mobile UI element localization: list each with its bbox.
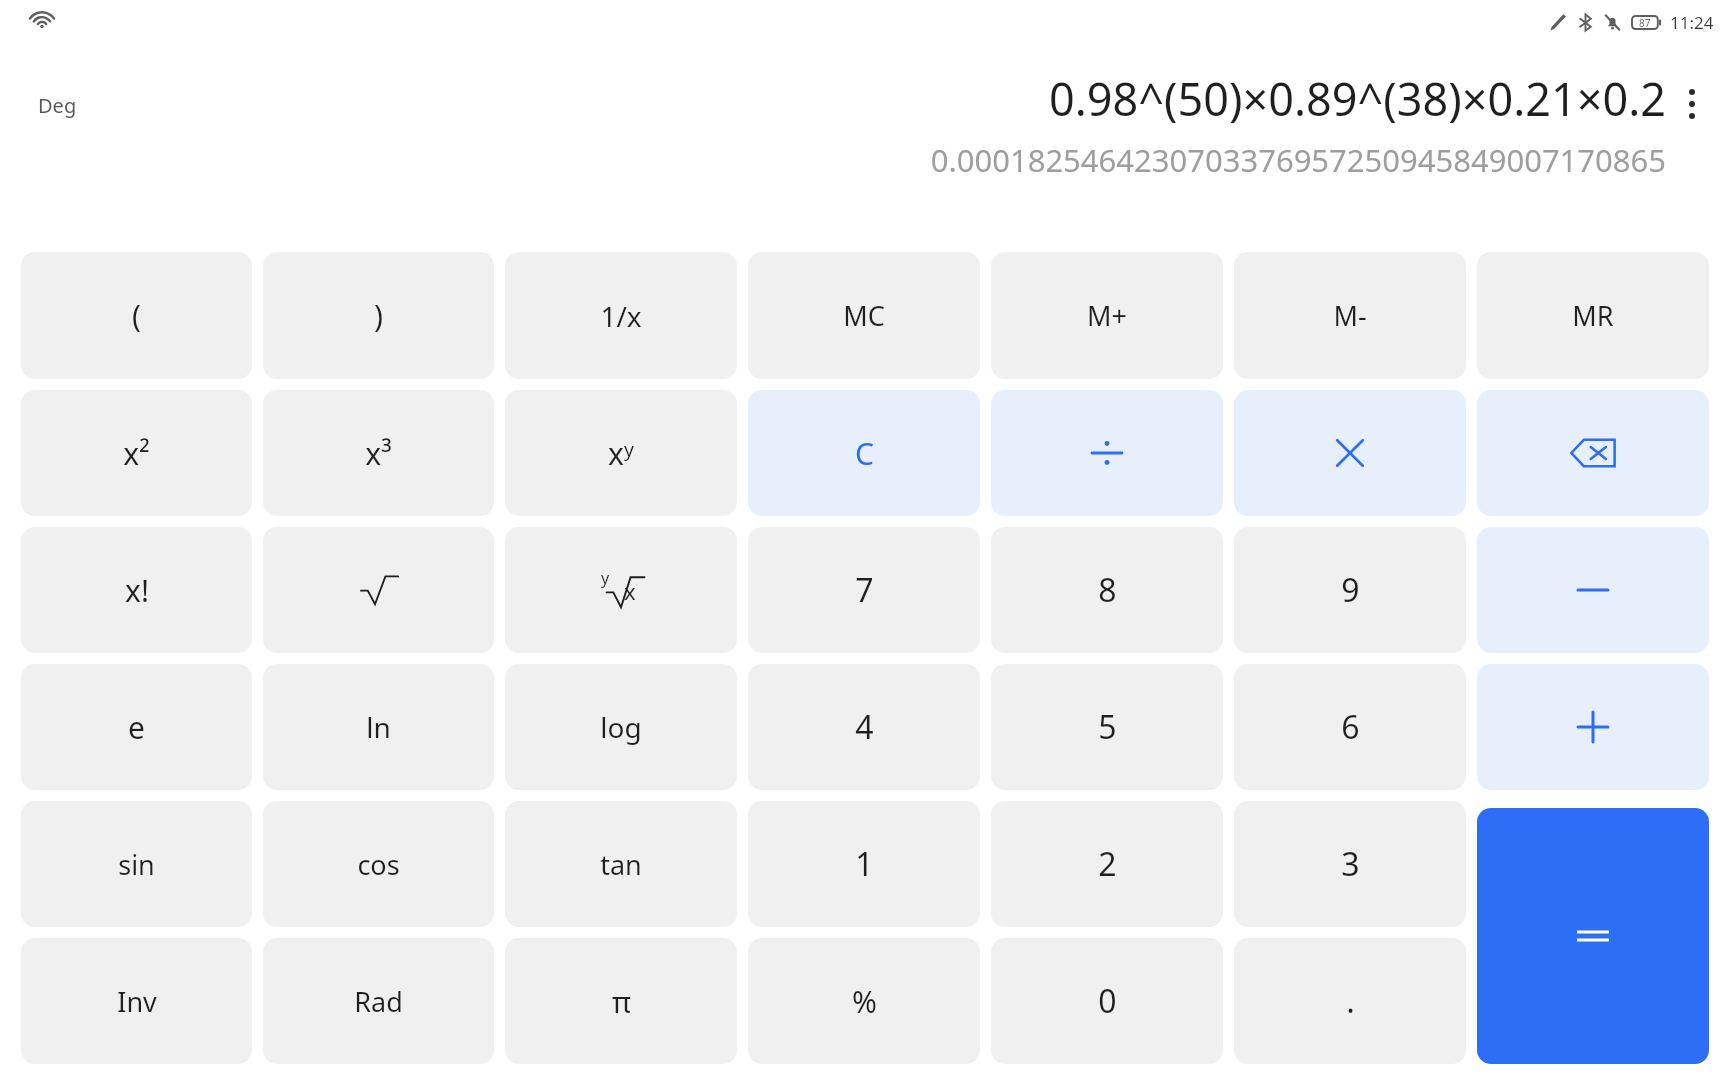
staticText: 87	[1639, 16, 1651, 30]
staticText: 1	[855, 842, 874, 886]
staticText: ln	[366, 708, 391, 746]
button[interactable]: 1/x	[505, 252, 737, 379]
staticText: 7	[855, 568, 874, 612]
button[interactable]: sin	[21, 801, 252, 927]
button[interactable]: 7	[748, 527, 980, 653]
button[interactable]: x³	[263, 390, 494, 516]
button[interactable]: M-	[1234, 252, 1466, 379]
staticText: 2	[1098, 842, 1117, 886]
button[interactable]: 0	[991, 938, 1223, 1064]
button[interactable]: %	[748, 938, 980, 1064]
staticText: x!	[125, 570, 149, 611]
button[interactable]: MC	[748, 252, 980, 379]
button[interactable]: 3	[1234, 801, 1466, 927]
staticText: 8	[1098, 568, 1117, 612]
staticText: xʸ	[608, 433, 634, 474]
button[interactable]: C	[748, 390, 980, 516]
staticText: 0	[1098, 979, 1117, 1023]
button[interactable]: π	[505, 938, 737, 1064]
staticText: 1/x	[600, 297, 642, 335]
button[interactable]: ln	[263, 664, 494, 790]
button[interactable]: Inv	[21, 938, 252, 1064]
staticText: x²	[123, 433, 150, 474]
staticText: MR	[1572, 297, 1614, 334]
staticText: )	[374, 295, 383, 336]
button[interactable]: log	[505, 664, 737, 790]
staticText: 11:24	[1670, 11, 1714, 34]
staticText: M-	[1333, 297, 1367, 334]
staticText: %	[852, 981, 877, 1022]
staticText: Inv	[117, 983, 157, 1020]
staticText: x³	[365, 433, 392, 474]
button[interactable]: 8	[991, 527, 1223, 653]
button[interactable]: .	[1234, 938, 1466, 1064]
staticText: .	[1346, 979, 1355, 1023]
button[interactable]: cos	[263, 801, 494, 927]
button[interactable]: 6	[1234, 664, 1466, 790]
button[interactable]: xʸ	[505, 390, 737, 516]
button[interactable]: 9	[1234, 527, 1466, 653]
staticText: log	[600, 708, 642, 746]
button[interactable]: 4	[748, 664, 980, 790]
button[interactable]: Plus	[1477, 664, 1709, 790]
staticText: Rad	[354, 983, 403, 1020]
staticText: 6	[1341, 705, 1360, 749]
staticText: 5	[1098, 705, 1117, 749]
staticText: 3	[1341, 842, 1360, 886]
staticText: π	[612, 982, 631, 1021]
button[interactable]: Backspace	[1477, 390, 1709, 516]
button[interactable]: Equals	[1477, 808, 1709, 1064]
button[interactable]: 1	[748, 801, 980, 927]
button[interactable]: 2	[991, 801, 1223, 927]
staticText: C	[855, 433, 874, 474]
staticText: 4	[855, 705, 874, 749]
button[interactable]: More options	[1670, 82, 1714, 126]
button[interactable]: x²	[21, 390, 252, 516]
staticText: M+	[1087, 297, 1127, 334]
button[interactable]: (	[21, 252, 252, 379]
button[interactable]: Minus	[1477, 527, 1709, 653]
staticText: x	[624, 576, 636, 606]
button[interactable]: MR	[1477, 252, 1709, 379]
staticText: y	[601, 567, 610, 589]
button[interactable]: Rad	[263, 938, 494, 1064]
staticText: 9	[1341, 568, 1360, 612]
button[interactable]: Sqrt	[263, 527, 494, 653]
button[interactable]: M+	[991, 252, 1223, 379]
button[interactable]: NthRoot	[505, 527, 737, 653]
staticText: (	[132, 295, 141, 336]
button[interactable]: Multiply	[1234, 390, 1466, 516]
staticText: 0.98^(50)×0.89^(38)×0.21×0.2	[1048, 68, 1666, 129]
button[interactable]: e	[21, 664, 252, 790]
staticText: sin	[118, 846, 155, 883]
button[interactable]: Divide	[991, 390, 1223, 516]
staticText: tan	[600, 846, 642, 883]
staticText: Deg	[38, 92, 77, 119]
button[interactable]: 5	[991, 664, 1223, 790]
button[interactable]: )	[263, 252, 494, 379]
staticText: cos	[357, 846, 400, 883]
button[interactable]: x!	[21, 527, 252, 653]
staticText: MC	[843, 297, 885, 334]
staticText: 0.00018254642307033769572509458490071708…	[930, 139, 1666, 181]
button[interactable]: tan	[505, 801, 737, 927]
staticText: e	[128, 707, 145, 748]
